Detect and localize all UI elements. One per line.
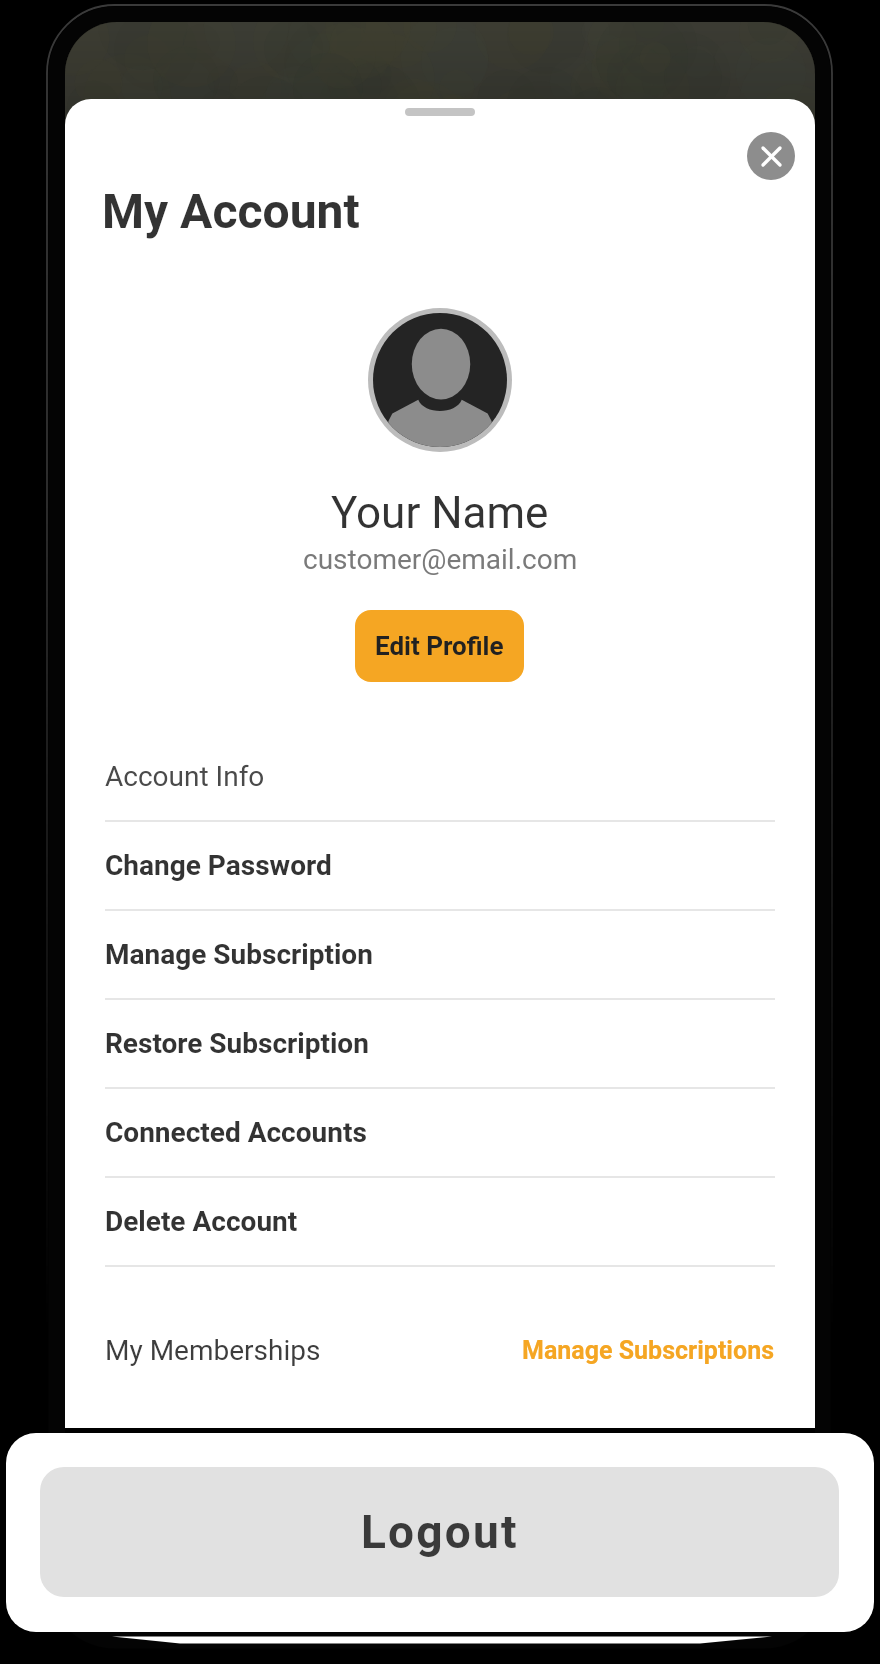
staticText: Connected Accounts — [105, 1116, 367, 1149]
staticText: customer@email.com — [303, 543, 578, 576]
staticText: Manage Subscriptions — [522, 1336, 775, 1365]
staticText: Account Info — [105, 760, 265, 793]
button[interactable]: Delete Account — [105, 1178, 775, 1265]
staticText: Your Name — [331, 487, 549, 539]
staticText: Logout — [361, 1505, 519, 1559]
button[interactable]: Manage Subscriptions — [522, 1336, 775, 1365]
button[interactable]: Account Info — [105, 733, 775, 820]
button[interactable]: Restore Subscription — [105, 1000, 775, 1087]
button[interactable]: Edit Profile — [355, 610, 524, 682]
staticText: My Account — [102, 183, 360, 239]
staticText: Edit Profile — [375, 631, 504, 661]
staticText: Delete Account — [105, 1205, 298, 1238]
staticText: Restore Subscription — [105, 1027, 369, 1060]
button[interactable]: Close — [747, 132, 795, 180]
button[interactable]: Change Password — [105, 822, 775, 909]
button[interactable]: Manage Subscription — [105, 911, 775, 998]
button[interactable]: Connected Accounts — [105, 1089, 775, 1176]
button[interactable]: Logout — [40, 1467, 839, 1597]
button[interactable]: My Memberships — [105, 1334, 321, 1367]
staticText: Change Password — [105, 849, 332, 882]
staticText: Manage Subscription — [105, 938, 373, 971]
staticText: My Memberships — [105, 1334, 321, 1367]
